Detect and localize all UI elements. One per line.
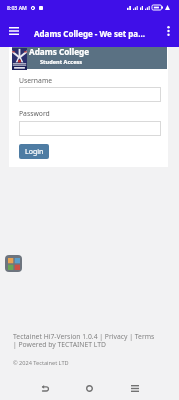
staticText: | Powered by TECTAINET LTD [13,340,106,349]
button[interactable]: Login [19,144,49,159]
button[interactable]: Home [78,376,101,400]
button[interactable]: Menu [0,14,28,47]
button[interactable]: Username input [19,87,161,102]
staticText: Username [19,76,53,85]
button[interactable]: Password input [19,121,161,136]
button[interactable]: Back [33,376,56,400]
staticText: 8:03 AM [7,4,27,11]
staticText: Password [19,109,50,118]
staticText: Adams College [29,46,90,57]
staticText: © 2024 Tectainet LTD [13,359,69,367]
staticText: Adams College - We set pa... [34,28,145,39]
button[interactable]: Recents [123,376,146,400]
staticText: Tectainet Hi7-Version 1.0.4 | Privacy | … [13,332,155,341]
staticText: Login [25,147,44,157]
staticText: Student Access [40,58,83,66]
button[interactable]: More options [158,14,179,47]
button[interactable]: Image placeholder [5,255,22,272]
